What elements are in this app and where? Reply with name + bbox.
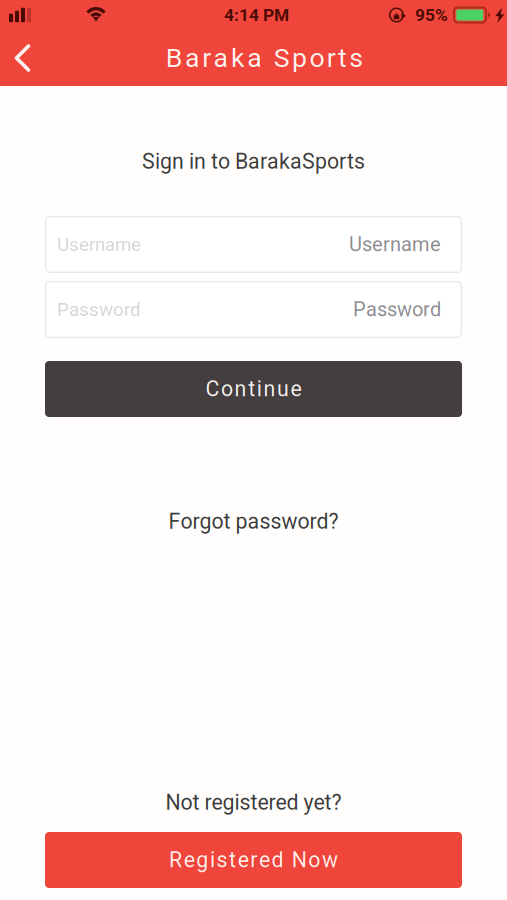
staticText: t bbox=[248, 376, 255, 401]
staticText: e bbox=[291, 376, 302, 401]
button[interactable]: C bbox=[45, 361, 462, 417]
button[interactable]: Forgot password? bbox=[144, 503, 362, 540]
staticText: C bbox=[205, 376, 219, 401]
staticText: e bbox=[259, 847, 270, 872]
staticText: e bbox=[184, 847, 195, 872]
staticText: Password bbox=[57, 299, 141, 320]
staticText: w bbox=[322, 847, 338, 872]
staticText: r bbox=[327, 42, 336, 74]
staticText: Username bbox=[349, 233, 441, 256]
staticText: Sign in to BarakaSports bbox=[142, 149, 365, 174]
staticText: o bbox=[221, 376, 233, 401]
staticText: r bbox=[250, 847, 257, 872]
staticText: u bbox=[277, 376, 289, 401]
staticText: d bbox=[271, 847, 283, 872]
staticText: Username bbox=[57, 234, 141, 255]
staticText: t bbox=[229, 847, 236, 872]
staticText: S bbox=[274, 42, 290, 74]
staticText: o bbox=[308, 847, 320, 872]
button[interactable]: Back bbox=[0, 30, 53, 86]
staticText: r bbox=[202, 42, 211, 74]
staticText: N bbox=[292, 847, 307, 872]
staticText: R bbox=[169, 847, 182, 872]
staticText: n bbox=[235, 376, 247, 401]
staticText: o bbox=[309, 42, 324, 74]
staticText: i bbox=[257, 376, 262, 401]
button[interactable]: R bbox=[45, 832, 462, 888]
staticText: a bbox=[247, 42, 262, 74]
staticText: t bbox=[338, 42, 347, 74]
staticText: a bbox=[214, 42, 229, 74]
staticText: Password bbox=[353, 298, 441, 321]
staticText: n bbox=[263, 376, 275, 401]
staticText: s bbox=[216, 847, 227, 872]
staticText: 95% bbox=[415, 5, 448, 25]
staticText: B bbox=[166, 42, 183, 74]
staticText: i bbox=[210, 847, 215, 872]
staticText: e bbox=[238, 847, 249, 872]
staticText: p bbox=[292, 42, 307, 74]
staticText: Forgot password? bbox=[168, 509, 338, 534]
staticText: 4:14 PM bbox=[224, 5, 289, 25]
staticText: Not registered yet? bbox=[165, 790, 341, 815]
staticText: a bbox=[185, 42, 200, 74]
staticText: k bbox=[231, 42, 245, 74]
staticText: g bbox=[196, 847, 208, 872]
staticText: s bbox=[349, 42, 363, 74]
